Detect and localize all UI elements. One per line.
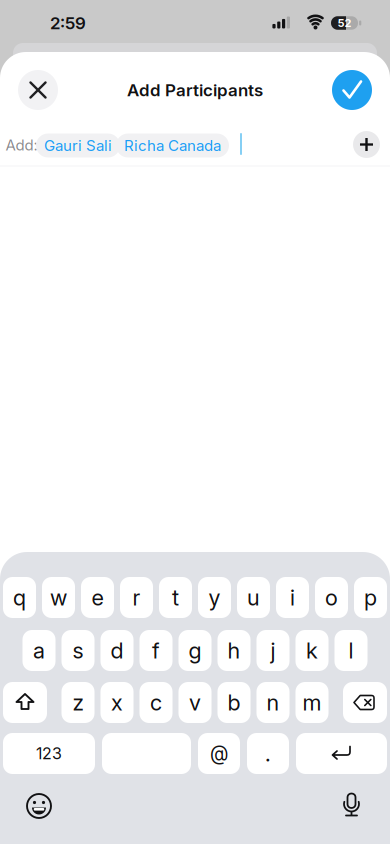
staticText: 52 (337, 16, 351, 29)
button[interactable]: a (22, 630, 55, 671)
button[interactable] (24, 791, 54, 821)
staticText: y (208, 584, 220, 610)
staticText: 123 (36, 744, 62, 763)
staticText: @ (210, 742, 228, 765)
button[interactable]: d (100, 630, 133, 671)
button[interactable]: b (217, 682, 250, 723)
staticText: h (227, 637, 240, 663)
staticText: d (110, 637, 123, 663)
staticText: w (50, 584, 67, 610)
button[interactable]: s (61, 630, 94, 671)
staticText: . (265, 740, 271, 766)
staticText: a (33, 637, 45, 663)
button[interactable] (3, 682, 47, 723)
staticText: n (266, 689, 279, 715)
staticText: s (72, 637, 83, 663)
button[interactable]: c (139, 682, 172, 723)
button[interactable]: p (354, 577, 387, 618)
button[interactable]: @ (198, 733, 240, 774)
button[interactable] (336, 790, 366, 820)
button[interactable]: u (237, 577, 270, 618)
button[interactable]: v (178, 682, 211, 723)
staticText: k (306, 637, 318, 663)
staticText: l (348, 637, 353, 663)
button[interactable]: k (295, 630, 328, 671)
button[interactable]: h (217, 630, 250, 671)
button[interactable]: w (42, 577, 75, 618)
button[interactable]: t (159, 577, 192, 618)
staticText: t (172, 584, 179, 610)
button[interactable]: x (100, 682, 133, 723)
button[interactable]: Gauri Sali (36, 133, 120, 157)
staticText: o (325, 584, 338, 610)
button[interactable] (18, 70, 58, 110)
button[interactable]: n (256, 682, 289, 723)
button[interactable]: f (139, 630, 172, 671)
button[interactable] (102, 733, 191, 774)
staticText: p (364, 584, 377, 610)
button[interactable]: z (61, 682, 94, 723)
button[interactable]: g (178, 630, 211, 671)
staticText: v (189, 689, 201, 715)
button[interactable] (343, 682, 387, 723)
button[interactable]: 123 (3, 733, 95, 774)
button[interactable]: . (247, 733, 289, 774)
button[interactable]: i (276, 577, 309, 618)
button[interactable]: l (334, 630, 367, 671)
button[interactable]: q (3, 577, 36, 618)
button[interactable]: Richa Canada (116, 133, 229, 157)
staticText: x (111, 689, 123, 715)
button[interactable]: r (120, 577, 153, 618)
staticText: g (188, 637, 201, 663)
staticText: q (13, 584, 26, 610)
staticText: Gauri Sali (44, 137, 112, 154)
button[interactable]: o (315, 577, 348, 618)
staticText: u (247, 584, 260, 610)
staticText: i (290, 584, 295, 610)
staticText: Add: (5, 136, 37, 154)
button[interactable]: m (295, 682, 328, 723)
button[interactable] (296, 733, 387, 774)
staticText: 2:59 (50, 13, 86, 33)
button[interactable] (332, 70, 372, 110)
staticText: f (152, 637, 160, 663)
button[interactable]: y (198, 577, 231, 618)
button[interactable]: j (256, 630, 289, 671)
button[interactable]: e (81, 577, 114, 618)
button[interactable] (353, 131, 380, 158)
staticText: Add Participants (127, 80, 263, 100)
staticText: r (132, 584, 140, 610)
staticText: c (150, 689, 162, 715)
staticText: Richa Canada (124, 137, 221, 154)
staticText: z (72, 689, 83, 715)
staticText: m (302, 689, 321, 715)
staticText: j (270, 637, 275, 663)
staticText: e (91, 584, 103, 610)
staticText: b (227, 689, 240, 715)
